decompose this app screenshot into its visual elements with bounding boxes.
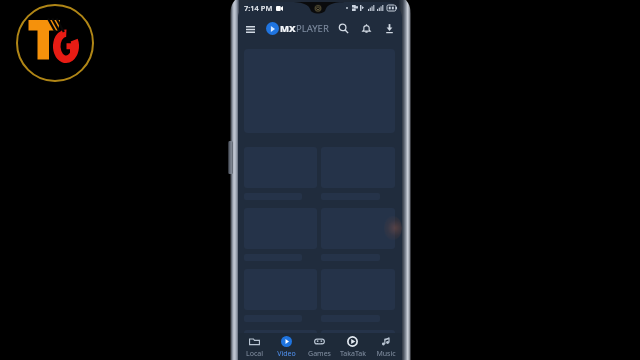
staticText: Video	[277, 349, 296, 359]
staticText: TakaTak	[340, 349, 366, 359]
staticText: 7:14 PM	[244, 3, 273, 13]
button[interactable]: Video	[270, 333, 303, 360]
button[interactable]	[244, 330, 317, 360]
staticText: Local	[246, 349, 263, 359]
button[interactable]: MX	[266, 22, 329, 35]
button[interactable]	[321, 208, 395, 261]
button[interactable]	[244, 147, 317, 200]
button[interactable]	[321, 147, 395, 200]
staticText: Games	[308, 349, 331, 359]
button[interactable]: TakaTak	[336, 333, 369, 360]
button[interactable]	[244, 269, 317, 322]
button[interactable]: Notifications	[358, 20, 375, 37]
button[interactable]: Menu	[242, 21, 258, 37]
button[interactable]	[321, 269, 395, 322]
button[interactable]: Search	[335, 20, 352, 37]
button[interactable]	[321, 330, 395, 360]
button[interactable]	[244, 208, 317, 261]
staticText: PLAYER	[296, 22, 329, 35]
staticText: Music	[376, 349, 396, 359]
staticText: MX	[280, 22, 296, 35]
button[interactable]: Music	[369, 333, 402, 360]
button[interactable]: Local	[238, 333, 270, 360]
button[interactable]: Games	[303, 333, 336, 360]
button[interactable]: Downloads	[381, 20, 398, 37]
